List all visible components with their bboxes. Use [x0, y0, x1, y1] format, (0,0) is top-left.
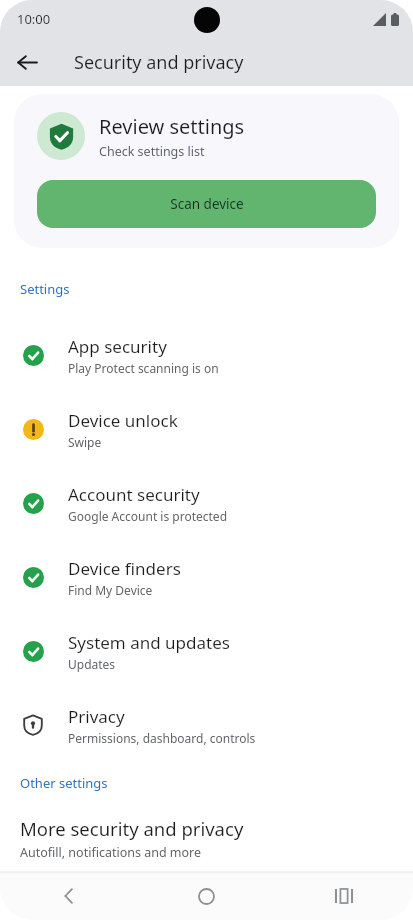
staticText: Updates: [68, 656, 116, 672]
button[interactable]: Privacy: [0, 688, 413, 762]
button[interactable]: App security: [0, 318, 413, 392]
button[interactable]: Device finders: [0, 540, 413, 614]
staticText: Play Protect scanning is on: [68, 360, 219, 376]
button[interactable]: Review settings: [14, 94, 399, 248]
staticText: App security: [68, 335, 167, 358]
staticText: Other settings: [20, 774, 108, 792]
button[interactable]: More security and privacy: [0, 812, 413, 871]
staticText: Find My Device: [68, 582, 153, 598]
staticText: More security and privacy: [20, 816, 244, 841]
button[interactable]: System and updates: [0, 614, 413, 688]
staticText: 10:00: [17, 10, 51, 28]
button[interactable]: Account security: [0, 466, 413, 540]
button[interactable]: Back: [8, 43, 46, 81]
button[interactable]: Back: [45, 872, 93, 920]
staticText: Settings: [20, 280, 70, 298]
staticText: Privacy: [68, 705, 125, 728]
staticText: Security and privacy: [74, 50, 244, 75]
staticText: Account security: [68, 483, 200, 506]
staticText: Device unlock: [68, 409, 178, 432]
button[interactable]: Home: [182, 872, 230, 920]
button[interactable]: Recent apps: [320, 872, 368, 920]
staticText: Scan device: [170, 195, 244, 213]
staticText: Device finders: [68, 557, 181, 580]
staticText: Autofill, notifications and more: [20, 844, 202, 861]
button[interactable]: Scan device: [37, 180, 376, 228]
staticText: System and updates: [68, 631, 230, 654]
staticText: Swipe: [68, 434, 102, 450]
button[interactable]: Device unlock: [0, 392, 413, 466]
staticText: Google Account is protected: [68, 508, 228, 524]
staticText: Review settings: [99, 113, 245, 140]
staticText: Permissions, dashboard, controls: [68, 730, 256, 746]
staticText: Check settings list: [99, 143, 205, 160]
